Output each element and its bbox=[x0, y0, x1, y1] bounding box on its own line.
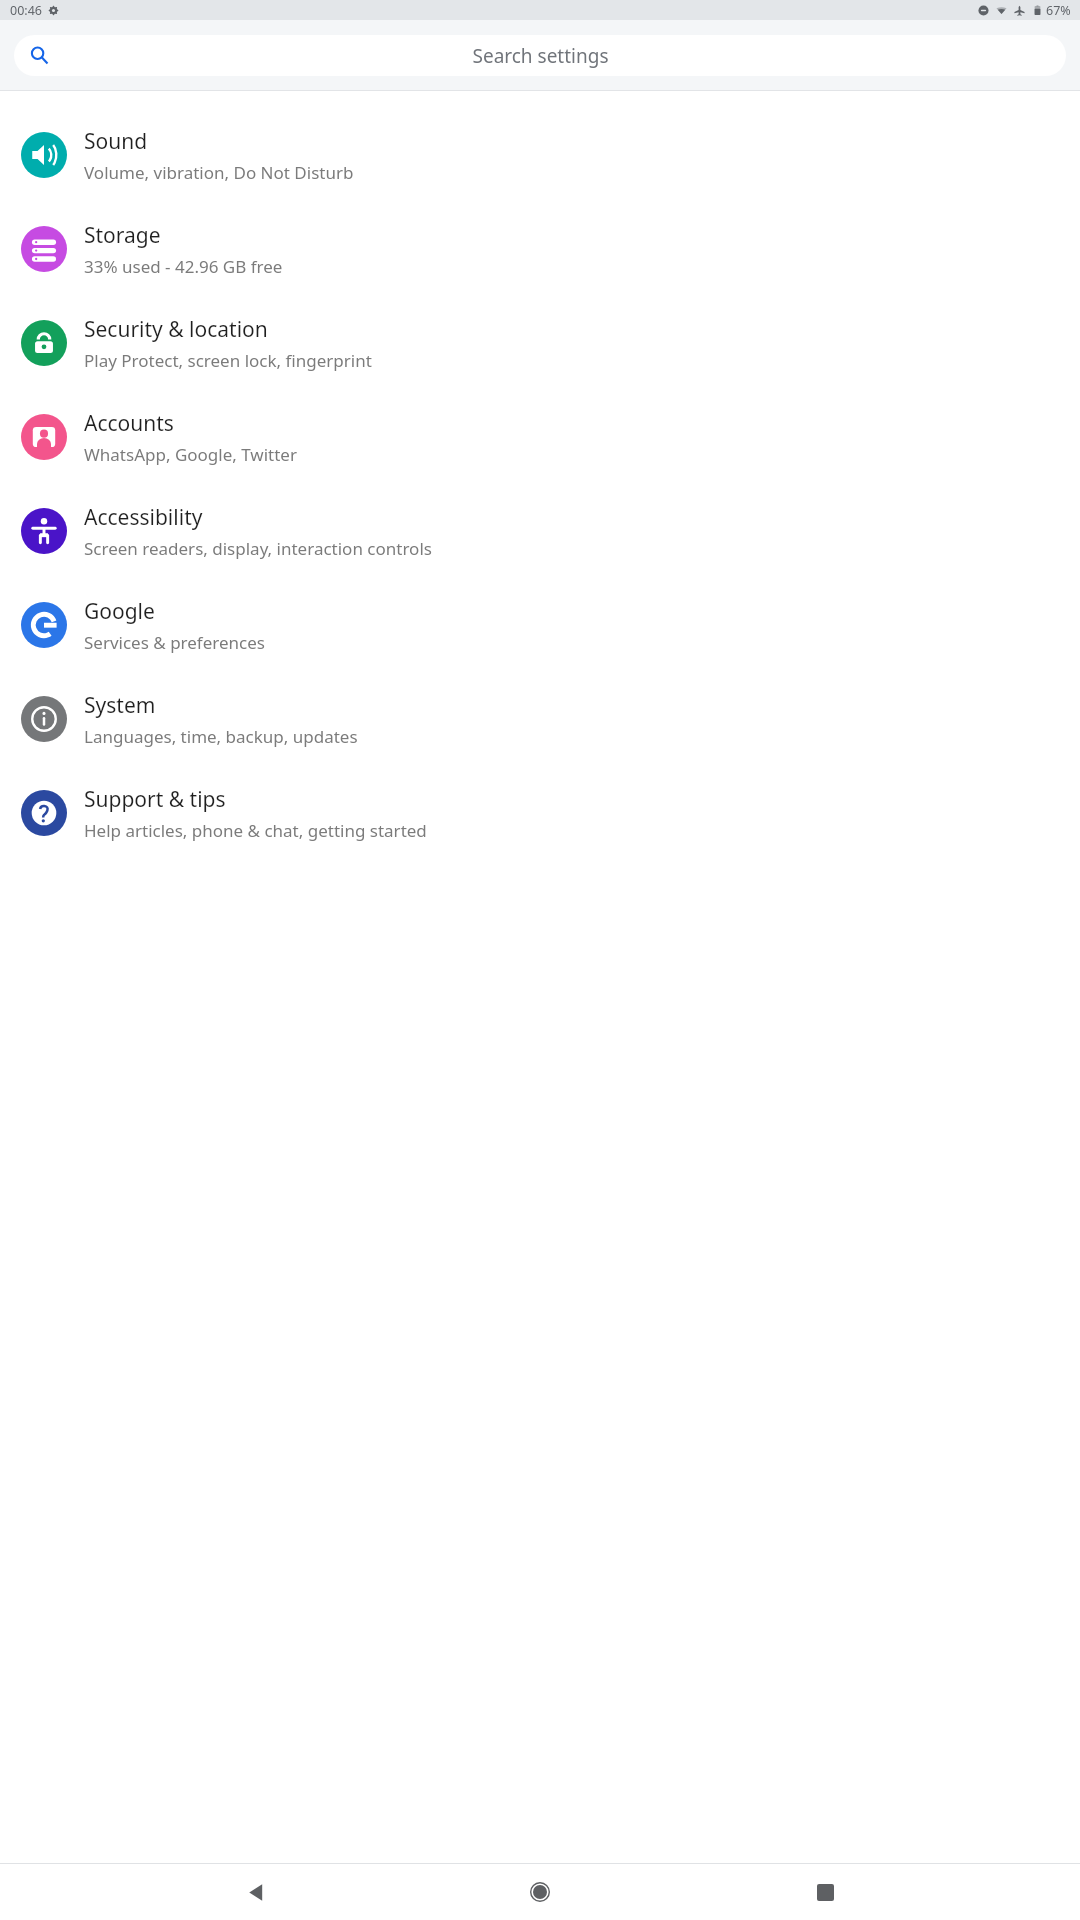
button[interactable]: Search settings bbox=[14, 35, 1066, 76]
staticText: System bbox=[84, 691, 156, 720]
button[interactable]: Security & location bbox=[0, 296, 1080, 390]
button[interactable]: Home bbox=[511, 1864, 569, 1920]
button[interactable]: Back bbox=[227, 1864, 285, 1920]
staticText: Accessibility bbox=[84, 503, 203, 532]
staticText: Services & preferences bbox=[84, 631, 265, 654]
staticText: Accounts bbox=[84, 409, 174, 438]
button[interactable]: Sound bbox=[0, 108, 1080, 202]
button[interactable]: Accounts bbox=[0, 390, 1080, 484]
button[interactable]: System bbox=[0, 672, 1080, 766]
staticText: Help articles, phone & chat, getting sta… bbox=[84, 819, 427, 842]
staticText: Support & tips bbox=[84, 785, 226, 814]
staticText: Storage bbox=[84, 221, 161, 250]
staticText: Search settings bbox=[472, 43, 609, 69]
staticText: Volume, vibration, Do Not Disturb bbox=[84, 161, 354, 184]
button[interactable]: Accessibility bbox=[0, 484, 1080, 578]
staticText: Sound bbox=[84, 127, 148, 156]
staticText: 00:46 bbox=[10, 2, 42, 19]
button[interactable]: Recent apps bbox=[796, 1864, 854, 1920]
staticText: WhatsApp, Google, Twitter bbox=[84, 443, 297, 466]
staticText: Security & location bbox=[84, 315, 268, 344]
staticText: Languages, time, backup, updates bbox=[84, 725, 358, 748]
button[interactable]: Storage bbox=[0, 202, 1080, 296]
staticText: Google bbox=[84, 597, 155, 626]
staticText: 33% used - 42.96 GB free bbox=[84, 255, 283, 278]
staticText: Screen readers, display, interaction con… bbox=[84, 537, 432, 560]
button[interactable]: Support & tips bbox=[0, 766, 1080, 860]
staticText: 67% bbox=[1046, 2, 1071, 19]
staticText: Play Protect, screen lock, fingerprint bbox=[84, 349, 372, 372]
button[interactable]: Google bbox=[0, 578, 1080, 672]
